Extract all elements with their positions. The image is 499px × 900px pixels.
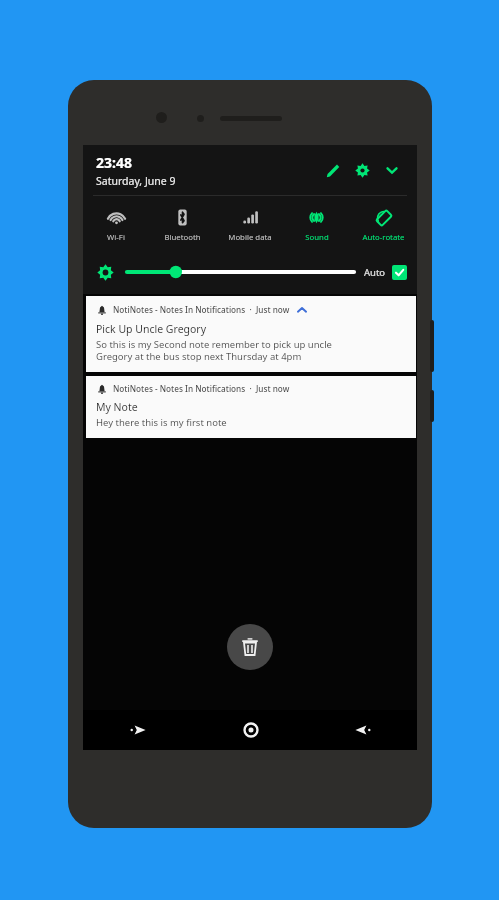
button[interactable]: NotiNotes - Notes In Notifications · Jus… [86,296,416,372]
staticText: Bluetooth [164,232,201,243]
staticText: 23:48 [96,153,132,172]
staticText: So this is my Second note remember to pi… [96,338,332,363]
button[interactable]: Wi-Fi [83,203,149,247]
button[interactable]: Mobile data [216,203,283,247]
staticText: Auto [364,266,386,279]
button[interactable]: Sound [283,203,350,247]
button[interactable]: Collapse [295,303,308,316]
staticText: Hey there this is my first note [96,416,227,429]
button[interactable]: Expand [377,155,407,185]
button[interactable]: Settings [347,155,377,185]
button[interactable]: Recents [83,710,195,750]
button[interactable]: Bluetooth [149,203,216,247]
button[interactable]: Auto brightness [392,265,407,280]
staticText: NotiNotes - Notes In Notifications · Jus… [113,383,290,394]
staticText: Pick Up Uncle Gregory [96,322,207,336]
staticText: Auto-rotate [362,232,405,243]
button[interactable]: Back [306,710,417,750]
staticText: My Note [96,400,138,414]
button[interactable]: Clear all notifications [227,624,273,670]
button[interactable]: Brightness [127,262,354,282]
button[interactable]: Edit [317,155,347,185]
staticText: Saturday, June 9 [96,174,176,188]
staticText: Wi-Fi [107,232,125,243]
staticText: NotiNotes - Notes In Notifications · Jus… [113,304,290,315]
button[interactable]: Home [195,710,306,750]
button[interactable]: Auto-rotate [350,203,417,247]
button[interactable]: NotiNotes - Notes In Notifications · Jus… [86,376,416,438]
staticText: Mobile data [228,232,272,243]
staticText: Sound [305,232,329,243]
